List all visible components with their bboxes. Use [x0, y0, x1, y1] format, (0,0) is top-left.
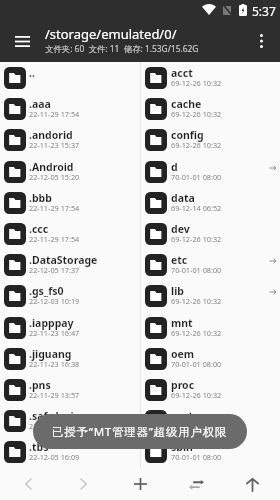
button[interactable]: .bbb: [0, 187, 140, 218]
button[interactable]: sbin: [141, 436, 280, 467]
staticText: 22-12-05 15:20: [29, 172, 80, 182]
staticText: oem: [171, 347, 195, 361]
staticText: .Android: [29, 160, 74, 174]
button[interactable]: New folder: [112, 468, 168, 500]
button[interactable]: ..: [0, 62, 140, 93]
button[interactable]: proc: [141, 374, 280, 405]
staticText: .DataStorage: [29, 253, 98, 267]
staticText: 22-11-23 15:37: [29, 140, 80, 150]
staticText: 22-11-23 16:47: [29, 328, 80, 338]
staticText: ..: [29, 66, 35, 80]
button[interactable]: .andorid: [0, 124, 140, 155]
staticText: .iapppay: [29, 316, 74, 330]
button[interactable]: config: [141, 124, 280, 155]
staticText: data: [171, 191, 195, 205]
staticText: .saf_device: [29, 409, 86, 423]
staticText: 70-01-01 08:00: [171, 359, 222, 369]
button[interactable]: mnt: [141, 312, 280, 343]
staticText: d: [171, 160, 178, 174]
staticText: 22-11-29 17:54: [29, 203, 80, 213]
button[interactable]: Switch panel: [168, 468, 224, 500]
button[interactable]: oem: [141, 343, 280, 374]
staticText: .pns: [29, 378, 51, 392]
button[interactable]: acct: [141, 62, 280, 93]
staticText: 22-12-05 16:09: [29, 421, 80, 431]
staticText: 已授予“MT管理器”超级用户权限: [52, 424, 228, 440]
staticText: .aaa: [29, 97, 51, 111]
staticText: 22-12-05 16:09: [29, 452, 80, 462]
button[interactable]: cache: [141, 93, 280, 124]
button[interactable]: .Android: [0, 156, 140, 187]
staticText: dev: [171, 222, 190, 236]
staticText: 22-12-05 17:37: [29, 265, 80, 275]
staticText: .andorid: [29, 128, 73, 142]
staticText: 70-01-01 08:00: [171, 452, 222, 462]
staticText: 69-12-26 10:32: [171, 78, 222, 88]
button[interactable]: .pns: [0, 374, 140, 405]
staticText: 22-11-23 16:38: [29, 359, 80, 369]
button[interactable]: .iapppay: [0, 312, 140, 343]
staticText: 69-12-26 10:32: [171, 109, 222, 119]
button[interactable]: .ccc: [0, 218, 140, 249]
staticText: 69-12-26 10:32: [171, 140, 222, 150]
staticText: 22-11-29 13:57: [29, 390, 80, 400]
staticText: .gs_fs0: [29, 284, 64, 298]
staticText: 69-12-14 06:52: [171, 203, 222, 213]
button[interactable]: dev: [141, 218, 280, 249]
button[interactable]: root: [141, 405, 280, 436]
button[interactable]: Menu: [8, 27, 36, 55]
staticText: proc: [171, 378, 195, 392]
staticText: config: [171, 128, 204, 142]
staticText: .bbb: [29, 191, 52, 205]
staticText: 70-01-01 08:00: [171, 421, 222, 431]
staticText: 22-11-29 17:54: [29, 109, 80, 119]
staticText: 70-01-01 08:00: [171, 172, 222, 182]
staticText: 69-12-26 10:32: [171, 328, 222, 338]
staticText: .ccc: [29, 222, 49, 236]
button[interactable]: .tbs: [0, 436, 140, 467]
button[interactable]: etc: [141, 249, 280, 280]
button[interactable]: .aaa: [0, 93, 140, 124]
staticText: cache: [171, 97, 202, 111]
button[interactable]: Up: [224, 468, 280, 500]
staticText: acct: [171, 66, 193, 80]
button[interactable]: More options: [247, 27, 275, 55]
button[interactable]: .DataStorage: [0, 249, 140, 280]
button[interactable]: .jiguang: [0, 343, 140, 374]
staticText: root: [171, 409, 194, 423]
staticText: 22-11-29 17:54: [29, 234, 80, 244]
staticText: 69-12-26 10:32: [171, 390, 222, 400]
button[interactable]: .saf_device: [0, 405, 140, 436]
staticText: 69-12-26 10:32: [171, 234, 222, 244]
staticText: .jiguang: [29, 347, 72, 361]
staticText: 文件夹: 60 文件: 11 储存: 1.53G/15.62G: [45, 43, 199, 54]
staticText: /storage/emulated/0/: [45, 25, 177, 43]
staticText: 70-01-01 08:00: [171, 265, 222, 275]
button[interactable]: .gs_fs0: [0, 280, 140, 311]
staticText: mnt: [171, 316, 193, 330]
button[interactable]: lib: [141, 280, 280, 311]
staticText: lib: [171, 284, 184, 298]
staticText: .tbs: [29, 440, 49, 454]
button[interactable]: Back: [0, 468, 56, 500]
button[interactable]: data: [141, 187, 280, 218]
button[interactable]: d: [141, 156, 280, 187]
staticText: 69-12-26 10:32: [171, 296, 222, 306]
staticText: 22-12-03 10:19: [29, 296, 80, 306]
button[interactable]: Forward: [56, 468, 112, 500]
staticText: sbin: [171, 440, 193, 454]
staticText: 5:37: [252, 3, 276, 19]
staticText: etc: [171, 253, 188, 267]
